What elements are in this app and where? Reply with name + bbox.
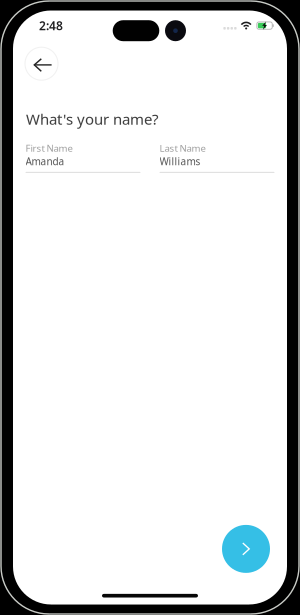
- button[interactable]: Back: [25, 47, 58, 80]
- staticText: Last Name: [159, 141, 205, 154]
- staticText: Williams: [159, 155, 200, 168]
- button[interactable]: Next: [222, 525, 270, 573]
- staticText: First Name: [25, 141, 72, 154]
- staticText: 2:48: [39, 17, 63, 34]
- button[interactable]: Last Name: [159, 143, 274, 173]
- staticText: Amanda: [25, 155, 64, 168]
- staticText: What's your name?: [26, 109, 158, 129]
- button[interactable]: First Name: [25, 143, 140, 173]
